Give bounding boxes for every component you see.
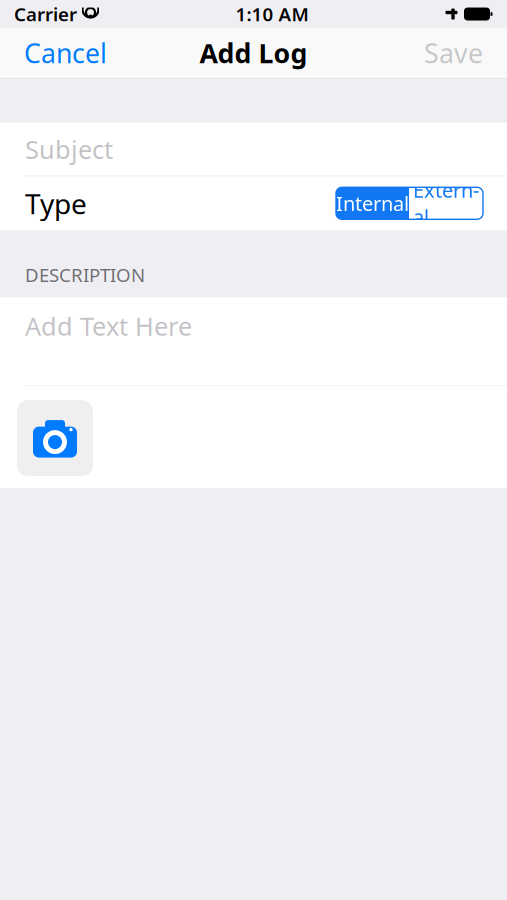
staticText: DESCRIPTION	[25, 262, 145, 287]
staticText: Cancel	[24, 35, 107, 71]
staticText: Internal	[336, 190, 409, 217]
staticText: External	[413, 177, 479, 230]
staticText: Save	[424, 35, 483, 71]
staticText: Add Log	[199, 35, 307, 71]
staticText: Add Text Here	[25, 309, 192, 343]
button[interactable]: Take Photo	[17, 400, 93, 476]
staticText: Subject	[25, 132, 113, 166]
button[interactable]: Internal	[336, 187, 483, 219]
button[interactable]: Save	[410, 31, 497, 75]
staticText: Type	[25, 185, 87, 222]
staticText: Carrier	[14, 2, 77, 26]
button[interactable]: Cancel	[10, 31, 121, 75]
staticText: 1:10 AM	[235, 2, 308, 26]
